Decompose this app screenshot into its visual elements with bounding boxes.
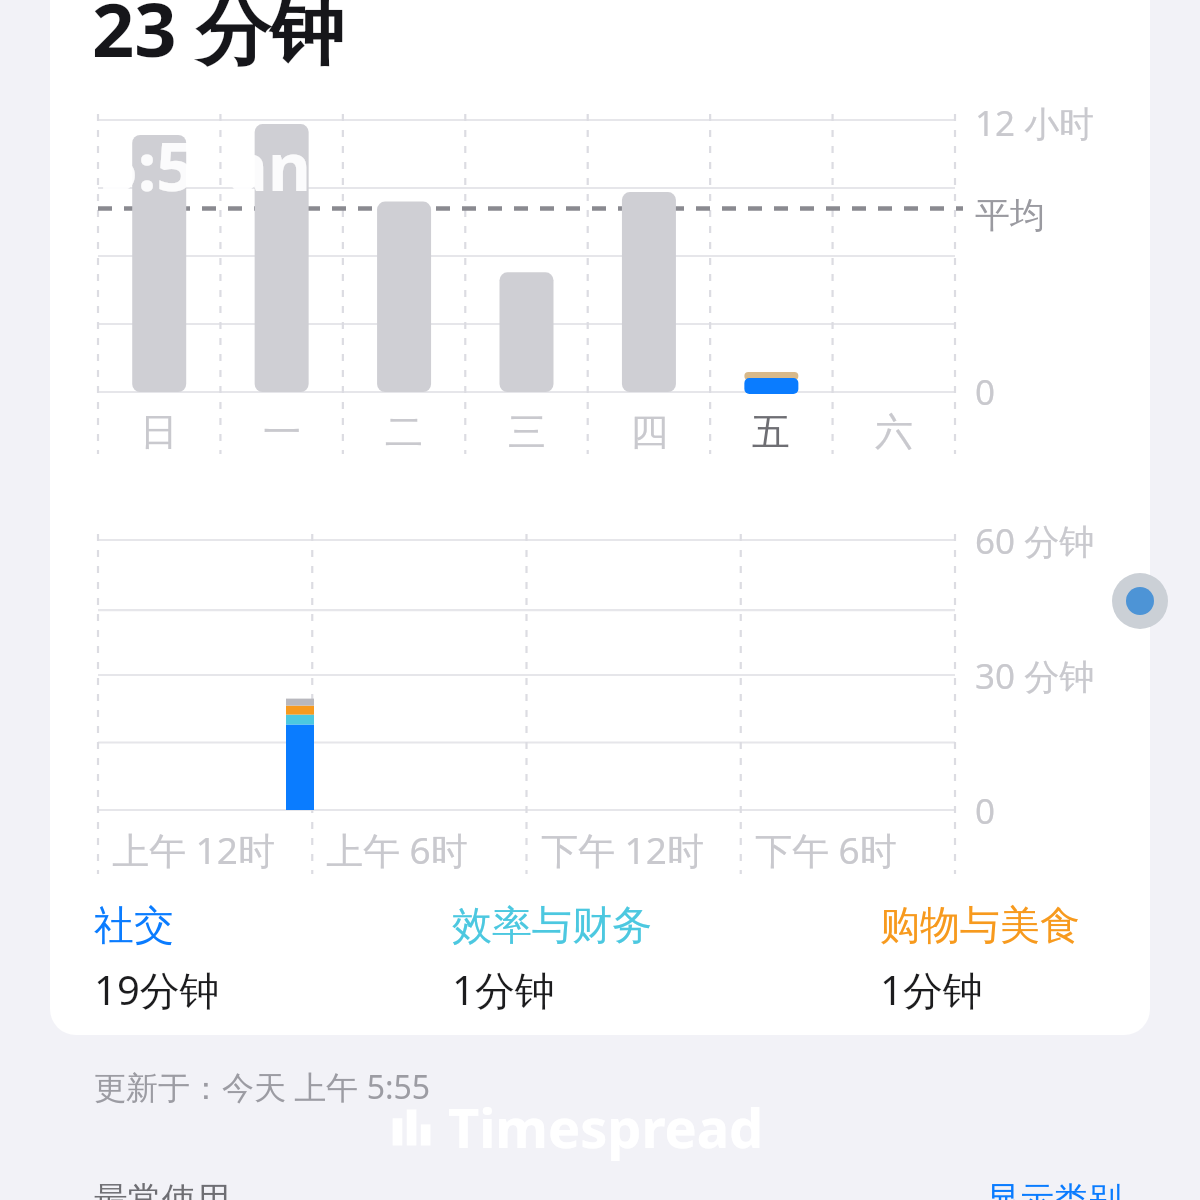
staticText: 12 小时 [975, 99, 1095, 147]
button[interactable]: 日 [135, 408, 183, 456]
staticText: 六 [875, 408, 913, 456]
staticText: 社交 [94, 900, 174, 950]
button[interactable]: 一 [258, 408, 306, 456]
button[interactable]: 社交 [94, 900, 220, 1017]
staticText: 下午 12时 [541, 824, 704, 875]
staticText: 显示类别 [986, 1178, 1122, 1200]
staticText: 购物与美食 [880, 900, 1080, 950]
button[interactable]: 上午 12时 [112, 824, 275, 875]
staticText: 1分钟 [880, 962, 983, 1017]
button[interactable]: 三 [503, 408, 551, 456]
button[interactable]: 二 [380, 408, 428, 456]
staticText: 60 分钟 [975, 517, 1095, 565]
button[interactable]: 下午 6时 [755, 824, 897, 875]
staticText: 1分钟 [452, 962, 555, 1017]
button[interactable]: 滚动指示器 [1112, 573, 1168, 629]
staticText: 平均 [975, 193, 1045, 237]
staticText: 一 [263, 408, 301, 456]
button[interactable]: 购物与美食 [880, 900, 1080, 1017]
button[interactable]: 显示类别 [986, 1178, 1122, 1200]
staticText: 19分钟 [94, 962, 220, 1017]
staticText: 5:5 an [100, 120, 311, 210]
staticText: 效率与财务 [452, 900, 652, 950]
staticText: 日 [140, 408, 178, 456]
staticText: 23 分钟 [92, 0, 344, 79]
staticText: 上午 12时 [112, 824, 275, 875]
button[interactable]: 下午 12时 [541, 824, 704, 875]
button[interactable]: 效率与财务 [452, 900, 652, 1017]
staticText: 最常使用 [94, 1178, 230, 1200]
staticText: 二 [385, 408, 423, 456]
button[interactable]: 五 [747, 408, 795, 456]
staticText: 更新于：今天 上午 5:55 [94, 1065, 431, 1109]
staticText: 三 [508, 408, 546, 456]
staticText: 30 分钟 [975, 652, 1095, 700]
staticText: 四 [630, 408, 668, 456]
button[interactable]: 四 [625, 408, 673, 456]
staticText: 上午 6时 [326, 824, 468, 875]
staticText: 0 [975, 368, 996, 416]
button[interactable]: 六 [870, 408, 918, 456]
staticText: 五 [752, 408, 790, 456]
button[interactable]: 上午 6时 [326, 824, 468, 875]
staticText: 0 [975, 787, 996, 835]
staticText: Timespread [448, 1090, 764, 1164]
staticText: 下午 6时 [755, 824, 897, 875]
